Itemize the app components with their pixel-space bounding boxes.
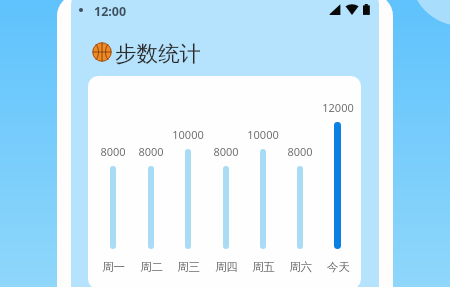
staticText: 8000 [100,144,126,159]
staticText: 8000 [287,144,313,159]
button[interactable]: 8000 [132,90,169,273]
button[interactable]: 8000 [281,90,318,273]
staticText: 12000 [322,100,354,115]
staticText: 周三 [177,260,200,274]
staticText: 步数统计 [115,40,201,67]
staticText: 10000 [172,127,204,142]
staticText: 8000 [213,144,239,159]
staticText: 周六 [289,260,312,274]
button[interactable]: 8000 [207,90,244,273]
staticText: 周四 [215,260,238,274]
staticText: 今天 [327,260,350,274]
staticText: 10000 [247,127,279,142]
staticText: 周一 [102,260,125,274]
button[interactable]: 10000 [169,90,206,273]
staticText: 8000 [138,144,164,159]
button[interactable]: 12000 [319,90,356,273]
staticText: 12:00 [94,3,127,20]
button[interactable]: 10000 [244,90,281,273]
staticText: 周二 [140,260,163,274]
staticText: 周五 [252,260,275,274]
button[interactable]: 8000 [94,90,131,273]
other: Status icons [329,4,373,16]
